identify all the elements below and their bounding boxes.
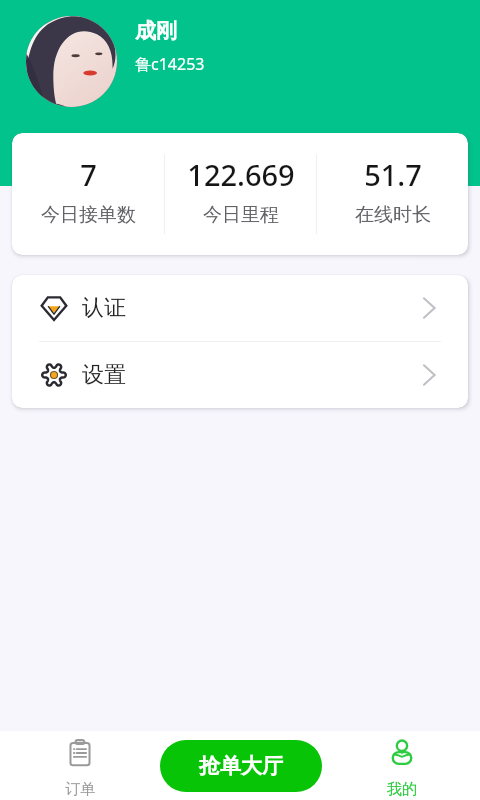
staticText: 122.669	[187, 155, 295, 194]
staticText: 今日里程	[203, 203, 279, 227]
staticText: 在线时长	[355, 203, 431, 227]
button[interactable]: 认证	[12, 275, 468, 341]
button[interactable]: 7	[12, 133, 164, 255]
staticText: 51.7	[364, 155, 422, 194]
staticText: 今日接单数	[41, 203, 136, 227]
button[interactable]: 抢单大厅	[160, 740, 322, 792]
button[interactable]: Profile photo	[26, 16, 117, 107]
button[interactable]: 122.669	[165, 133, 316, 255]
staticText: 订单	[65, 780, 95, 799]
button[interactable]: 订单	[40, 739, 120, 799]
staticText: 认证	[82, 294, 126, 322]
staticText: 我的	[387, 780, 417, 799]
staticText: 鲁c14253	[135, 53, 205, 75]
staticText: 设置	[82, 361, 126, 389]
staticText: 7	[80, 155, 97, 194]
staticText: 成刚	[135, 18, 177, 44]
button[interactable]: 设置	[12, 342, 468, 408]
button[interactable]: 我的	[362, 739, 442, 799]
staticText: 抢单大厅	[199, 753, 283, 779]
button[interactable]: 51.7	[317, 133, 468, 255]
